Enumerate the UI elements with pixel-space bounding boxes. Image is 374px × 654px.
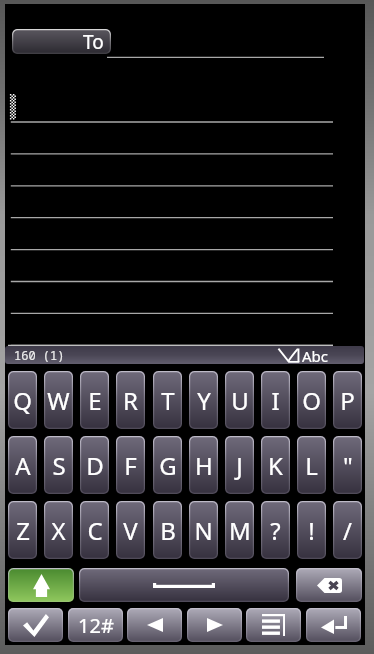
- button[interactable]: S: [44, 436, 73, 494]
- staticText: C: [87, 514, 103, 547]
- button[interactable]: R: [116, 371, 145, 429]
- button[interactable]: H: [189, 436, 218, 494]
- staticText: F: [124, 449, 137, 482]
- staticText: M: [229, 514, 251, 547]
- button[interactable]: W: [44, 371, 73, 429]
- button[interactable]: L: [297, 436, 326, 494]
- button[interactable]: K: [261, 436, 290, 494]
- button[interactable]: P: [333, 371, 362, 429]
- staticText: Z: [16, 514, 30, 547]
- staticText: /: [343, 514, 352, 547]
- button[interactable]: N: [189, 501, 218, 559]
- button[interactable]: I: [261, 371, 290, 429]
- staticText: Q: [13, 384, 32, 417]
- staticText: G: [159, 449, 177, 482]
- staticText: W: [47, 384, 70, 417]
- button[interactable]: O: [297, 371, 326, 429]
- button[interactable]: G: [153, 436, 182, 494]
- staticText: O: [302, 384, 321, 417]
- staticText: !: [308, 514, 315, 547]
- button[interactable]: C: [80, 501, 109, 559]
- button[interactable]: Q: [8, 371, 37, 429]
- button[interactable]: Backspace: [296, 568, 362, 602]
- button[interactable]: E: [80, 371, 109, 429]
- button[interactable]: F: [116, 436, 145, 494]
- button[interactable]: T: [153, 371, 182, 429]
- button[interactable]: To: [12, 29, 111, 54]
- staticText: 12#: [78, 612, 114, 639]
- button[interactable]: B: [153, 501, 182, 559]
- button[interactable]: X: [44, 501, 73, 559]
- staticText: Y: [197, 384, 211, 417]
- staticText: I: [271, 384, 280, 417]
- staticText: D: [86, 449, 104, 482]
- staticText: L: [305, 449, 318, 482]
- button[interactable]: Move right: [187, 608, 242, 642]
- button[interactable]: A: [8, 436, 37, 494]
- staticText: P: [340, 384, 355, 417]
- staticText: Abc: [302, 346, 329, 364]
- button[interactable]: Move left: [127, 608, 182, 642]
- staticText: H: [195, 449, 213, 482]
- staticText: A: [15, 449, 31, 482]
- staticText: N: [194, 514, 213, 547]
- staticText: R: [123, 384, 138, 417]
- staticText: U: [231, 384, 249, 417]
- staticText: X: [51, 514, 66, 547]
- staticText: T: [161, 384, 175, 417]
- button[interactable]: Enter: [306, 608, 361, 642]
- staticText: E: [88, 384, 102, 417]
- button[interactable]: Options: [246, 608, 301, 642]
- button[interactable]: Accept: [8, 608, 63, 642]
- staticText: To: [83, 29, 104, 54]
- staticText: K: [268, 449, 283, 482]
- staticText: B: [160, 514, 176, 547]
- staticText: S: [52, 449, 66, 482]
- button[interactable]: /: [333, 501, 362, 559]
- button[interactable]: J: [225, 436, 254, 494]
- button[interactable]: !: [297, 501, 326, 559]
- staticText: 160 (1): [14, 347, 65, 363]
- staticText: ": [343, 449, 353, 482]
- button[interactable]: Shift: [8, 568, 74, 602]
- button[interactable]: Z: [8, 501, 37, 559]
- staticText: V: [123, 514, 138, 547]
- button[interactable]: V: [116, 501, 145, 559]
- button[interactable]: D: [80, 436, 109, 494]
- button[interactable]: Y: [189, 371, 218, 429]
- button[interactable]: 12#: [68, 608, 123, 642]
- button[interactable]: ": [333, 436, 362, 494]
- staticText: J: [236, 449, 243, 482]
- button[interactable]: ?: [261, 501, 290, 559]
- button[interactable]: Space: [79, 568, 289, 602]
- staticText: ?: [270, 514, 281, 547]
- button[interactable]: U: [225, 371, 254, 429]
- button[interactable]: M: [225, 501, 254, 559]
